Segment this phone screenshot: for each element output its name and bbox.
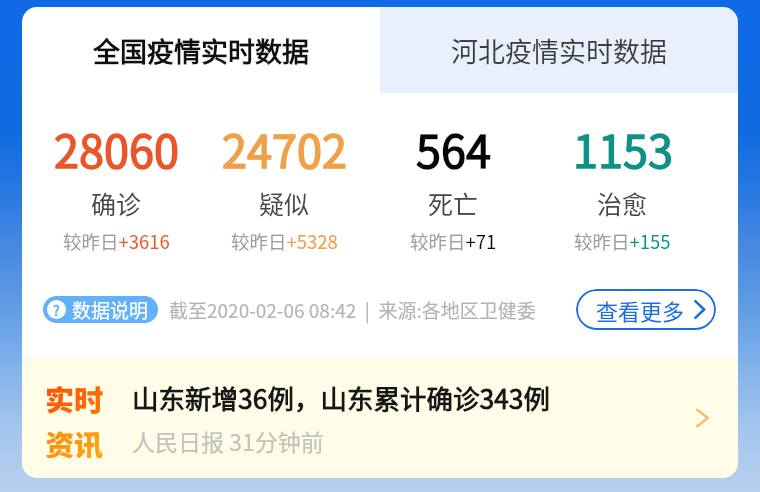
staticText: 疑似 (259, 185, 310, 221)
staticText: 24702 (222, 116, 347, 181)
staticText: 较昨日+3616 (63, 228, 170, 255)
staticText: 1153 (573, 116, 673, 181)
button[interactable]: 564 (369, 116, 538, 255)
button[interactable]: 河北疫情实时数据 (380, 7, 738, 93)
staticText: 较昨日+71 (410, 228, 497, 255)
staticText: 28060 (54, 116, 179, 181)
staticText: 人民日报 31分钟前 (132, 424, 324, 457)
button[interactable]: 实时 (22, 357, 738, 478)
button[interactable]: 查看更多 (576, 289, 716, 330)
staticText: 山东新增36例，山东累计确诊343例 (132, 378, 551, 416)
staticText: 治愈 (597, 185, 648, 221)
staticText: 较昨日+5328 (231, 228, 338, 255)
button[interactable]: 1153 (538, 116, 707, 255)
button[interactable]: 全国疫情实时数据 (22, 7, 380, 93)
staticText: 较昨日+155 (574, 228, 671, 255)
staticText: 资讯 (45, 422, 104, 458)
staticText: 河北疫情实时数据 (451, 31, 667, 70)
staticText: 实时 (45, 377, 104, 419)
staticText: 截至2020-02-06 08:42 | 来源:各地区卫健委 (169, 296, 536, 324)
staticText: 查看更多 (596, 294, 685, 326)
staticText: ? (53, 300, 60, 319)
staticText: 数据说明 (72, 296, 149, 323)
button[interactable]: 24702 (200, 116, 369, 255)
staticText: 564 (416, 116, 491, 181)
button[interactable]: ? (43, 296, 158, 323)
staticText: 全国疫情实时数据 (93, 31, 309, 70)
button[interactable]: 28060 (32, 116, 200, 255)
other: Open news (690, 406, 714, 430)
staticText: 死亡 (428, 185, 479, 221)
staticText: 确诊 (91, 185, 142, 221)
